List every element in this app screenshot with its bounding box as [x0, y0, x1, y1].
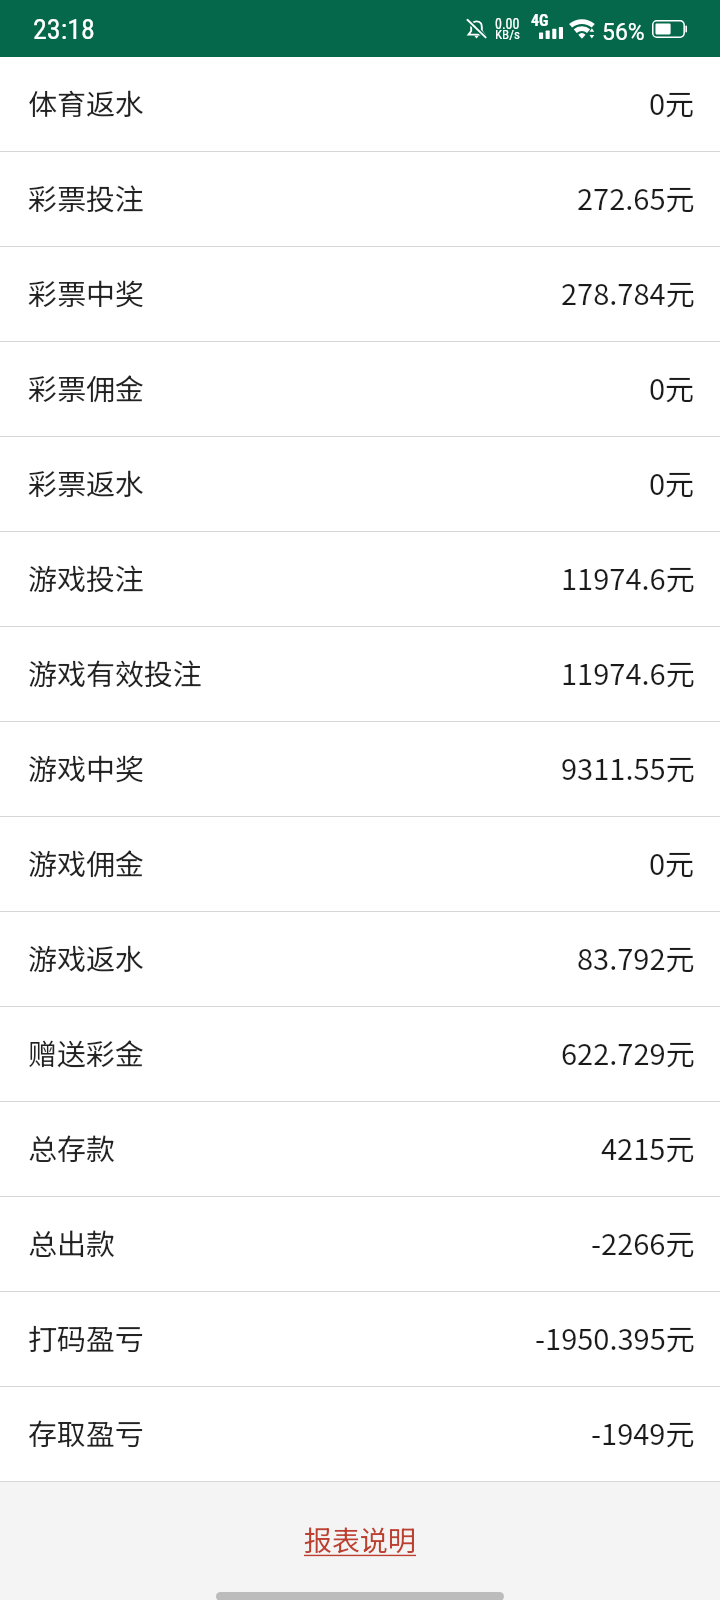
staticText: 11974.6元	[561, 651, 695, 693]
staticText: 打码盈亏	[28, 1316, 145, 1358]
staticText: KB/s	[495, 27, 520, 42]
other: Notifications silenced	[467, 19, 486, 39]
staticText: 总存款	[28, 1126, 116, 1168]
staticText: 23:18	[33, 13, 95, 46]
button[interactable]: 游戏有效投注	[0, 627, 720, 721]
staticText: 11974.6元	[561, 556, 695, 598]
staticText: 83.792元	[577, 936, 695, 978]
staticText: 游戏佣金	[28, 841, 145, 883]
button[interactable]: 打码盈亏	[0, 1292, 720, 1386]
button[interactable]: 彩票中奖	[0, 247, 720, 341]
staticText: 彩票投注	[28, 176, 145, 218]
staticText: 0元	[649, 366, 695, 408]
staticText: 0元	[649, 81, 695, 123]
staticText: 彩票返水	[28, 461, 145, 503]
staticText: 游戏中奖	[28, 746, 145, 788]
staticText: 报表说明	[304, 1519, 417, 1560]
staticText: 9311.55元	[561, 746, 695, 788]
button[interactable]: 游戏投注	[0, 532, 720, 626]
button[interactable]: 体育返水	[0, 57, 720, 151]
button[interactable]: 总存款	[0, 1102, 720, 1196]
button[interactable]: 彩票佣金	[0, 342, 720, 436]
staticText: -1949元	[591, 1411, 695, 1453]
staticText: 4215元	[601, 1126, 695, 1168]
button[interactable]: 赠送彩金	[0, 1007, 720, 1101]
button[interactable]: 游戏中奖	[0, 722, 720, 816]
staticText: 存取盈亏	[28, 1411, 145, 1453]
staticText: 体育返水	[28, 81, 145, 123]
staticText: 0元	[649, 841, 695, 883]
staticText: 游戏有效投注	[28, 651, 203, 693]
button[interactable]: 总出款	[0, 1197, 720, 1291]
staticText: 0.00	[495, 16, 520, 32]
button[interactable]: 存取盈亏	[0, 1387, 720, 1481]
staticText: 游戏返水	[28, 936, 145, 978]
staticText: 0元	[649, 461, 695, 503]
staticText: 彩票中奖	[28, 271, 145, 313]
staticText: 游戏投注	[28, 556, 145, 598]
staticText: 56%	[602, 19, 645, 46]
button[interactable]: 彩票返水	[0, 437, 720, 531]
button[interactable]: 报表说明	[298, 1517, 423, 1562]
staticText: 赠送彩金	[28, 1031, 145, 1073]
button[interactable]: 游戏返水	[0, 912, 720, 1006]
staticText: -1950.395元	[535, 1316, 695, 1358]
staticText: 272.65元	[577, 176, 695, 218]
staticText: 彩票佣金	[28, 366, 145, 408]
staticText: 622.729元	[561, 1031, 695, 1073]
button[interactable]: 游戏佣金	[0, 817, 720, 911]
staticText: 4G	[531, 11, 549, 30]
staticText: 278.784元	[561, 271, 695, 313]
staticText: 总出款	[28, 1221, 116, 1263]
button[interactable]: 彩票投注	[0, 152, 720, 246]
staticText: -2266元	[591, 1221, 695, 1263]
